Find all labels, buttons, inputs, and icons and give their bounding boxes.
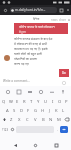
button[interactable]: F [25, 106, 32, 115]
button[interactable]: m.dailyhunt.in/h/n... [10, 7, 57, 13]
staticText: M [57, 117, 61, 123]
staticText: P [65, 99, 68, 105]
staticText: G [34, 108, 38, 114]
staticText: कोरोना वायरस के चलते लॉकडाउन [19, 25, 55, 29]
staticText: ?123 [2, 128, 9, 132]
staticText: परेशानियों का सामना [14, 57, 38, 61]
staticText: V [34, 117, 37, 123]
staticText: X [18, 117, 21, 123]
button[interactable]: H [39, 106, 46, 115]
button[interactable]: Tool 1 [15, 88, 23, 96]
button[interactable]: Tool 5 [59, 88, 67, 96]
staticText: K [55, 108, 58, 114]
button[interactable]: K [53, 106, 60, 115]
button[interactable]: M [55, 115, 63, 124]
button[interactable]: . [55, 125, 60, 134]
button[interactable]: S [11, 106, 18, 115]
staticText: news [51, 18, 58, 22]
staticText: कोरोना वायरस संक्रमण के बाद देश [14, 37, 53, 41]
staticText: T [30, 99, 33, 105]
staticText: R [23, 99, 26, 105]
button[interactable]: U [42, 97, 49, 106]
button[interactable]: L [60, 106, 67, 115]
staticText: m.dailyhunt.in/h/n... [15, 8, 46, 12]
staticText: Write a comment... [3, 79, 30, 83]
button[interactable]: Tool 4 [48, 88, 56, 96]
button[interactable]: J [46, 106, 53, 115]
button[interactable]: Q [1, 97, 7, 106]
staticText: J [49, 108, 51, 114]
button[interactable]: Info [61, 80, 66, 85]
staticText: S [13, 108, 16, 114]
staticText: Go [62, 71, 66, 75]
button[interactable]: Y [35, 97, 42, 106]
button[interactable]: N [47, 115, 55, 124]
staticText: E [16, 99, 19, 105]
staticText: I [52, 99, 54, 105]
button[interactable]: Tabs [58, 7, 64, 13]
staticText: A [6, 108, 9, 114]
staticText: Z [10, 117, 13, 123]
button[interactable]: O [56, 97, 63, 106]
button[interactable]: Tool 0 [4, 88, 12, 96]
button[interactable]: R [21, 97, 28, 106]
button[interactable]: Emoji [9, 125, 15, 134]
button[interactable]: Shift [0, 115, 8, 124]
staticText: L [62, 108, 65, 114]
staticText: N [49, 117, 53, 123]
button[interactable]: Z [8, 115, 15, 124]
staticText: करना पड़ रहा [14, 62, 29, 66]
staticText: F [27, 108, 30, 114]
button[interactable]: Backspace [63, 115, 71, 124]
staticText: share [59, 18, 67, 22]
button[interactable]: B [39, 115, 47, 124]
staticText: Y [37, 99, 40, 105]
staticText: C [26, 117, 29, 123]
button[interactable]: E [14, 97, 21, 106]
button[interactable]: A [4, 106, 11, 115]
button[interactable]: ?123 [1, 125, 9, 134]
staticText: में हुआ [19, 30, 26, 34]
staticText: दैनिक [33, 17, 40, 21]
button[interactable]: W [7, 97, 14, 106]
staticText: U [44, 99, 48, 105]
button[interactable]: V [31, 115, 39, 124]
button[interactable]: D [18, 106, 25, 115]
button[interactable]: G [32, 106, 39, 115]
staticText: Q [2, 99, 6, 105]
button[interactable]: More options [65, 7, 71, 13]
button[interactable]: Back [10, 140, 21, 150]
button[interactable]: X [15, 115, 23, 124]
button[interactable]: Home [30, 140, 41, 150]
staticText: D [20, 108, 24, 114]
button[interactable]: Tool 3 [37, 88, 45, 96]
button[interactable]: Tool 2 [26, 88, 34, 96]
button[interactable]: C [23, 115, 31, 124]
button[interactable]: कोरोना वायरस के चलते लॉकडाउन [14, 23, 68, 34]
button[interactable]: Profile [4, 55, 10, 61]
button[interactable]: Post [59, 69, 69, 77]
staticText: . [57, 127, 58, 132]
staticText: कामकाज ठप पड़ गए हैं। इसके [14, 47, 48, 51]
button[interactable]: Menu [67, 18, 70, 21]
button[interactable]: I [49, 97, 56, 106]
staticText: H [41, 108, 45, 114]
staticText: चलते लोगों को बहुत सारी [14, 52, 42, 56]
button[interactable]: Recents [51, 140, 62, 150]
staticText: में लॉकडाउन की वजह से सभी [14, 42, 48, 46]
staticText: B [42, 117, 45, 123]
button[interactable]: share [59, 18, 67, 22]
button[interactable]: P [63, 97, 70, 106]
button[interactable]: Home [2, 7, 8, 13]
staticText: W [9, 99, 13, 105]
button[interactable]: T [28, 97, 35, 106]
button[interactable]: Enter [60, 126, 68, 133]
button[interactable]: news [51, 18, 58, 22]
staticText: O [58, 99, 62, 105]
